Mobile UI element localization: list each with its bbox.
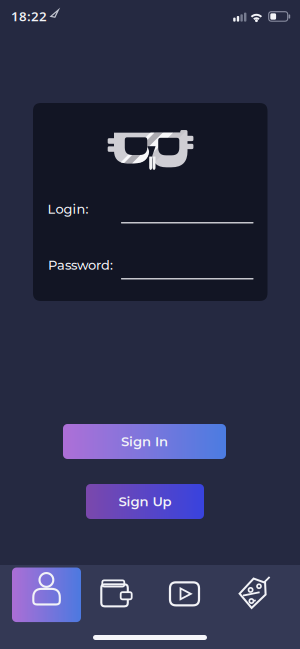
button[interactable]: Videos [150, 567, 219, 622]
staticText: Sign In [121, 433, 168, 450]
button[interactable]: Sign In [63, 424, 226, 459]
staticText: Sign Up [118, 493, 171, 510]
button[interactable]: Password field [121, 253, 253, 280]
button[interactable]: Login field [121, 197, 253, 224]
button[interactable]: Deals [219, 567, 288, 622]
staticText: 18:22 [11, 7, 47, 25]
button[interactable]: Profile [12, 567, 81, 622]
staticText: Login: [47, 201, 88, 217]
button[interactable]: Sign Up [86, 484, 204, 519]
button[interactable]: Wallet [81, 567, 150, 622]
staticText: Password: [48, 257, 113, 273]
